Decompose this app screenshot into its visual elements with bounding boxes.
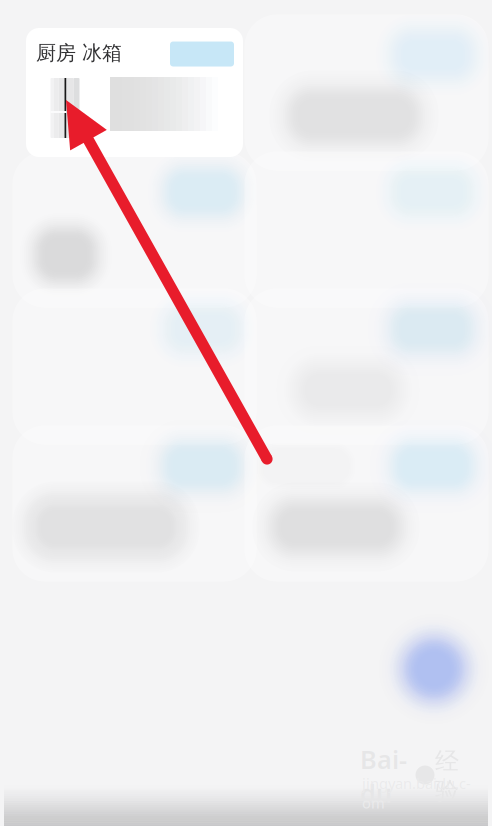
- staticText: Baidu: [360, 742, 407, 810]
- button[interactable]: Add device: [364, 599, 492, 739]
- staticText: 厨房 冰箱: [36, 41, 122, 65]
- staticText: 经验: [435, 746, 459, 805]
- button[interactable]: 厨房 冰箱: [26, 28, 243, 157]
- staticText: jingyan.baidu.com: [362, 773, 471, 812]
